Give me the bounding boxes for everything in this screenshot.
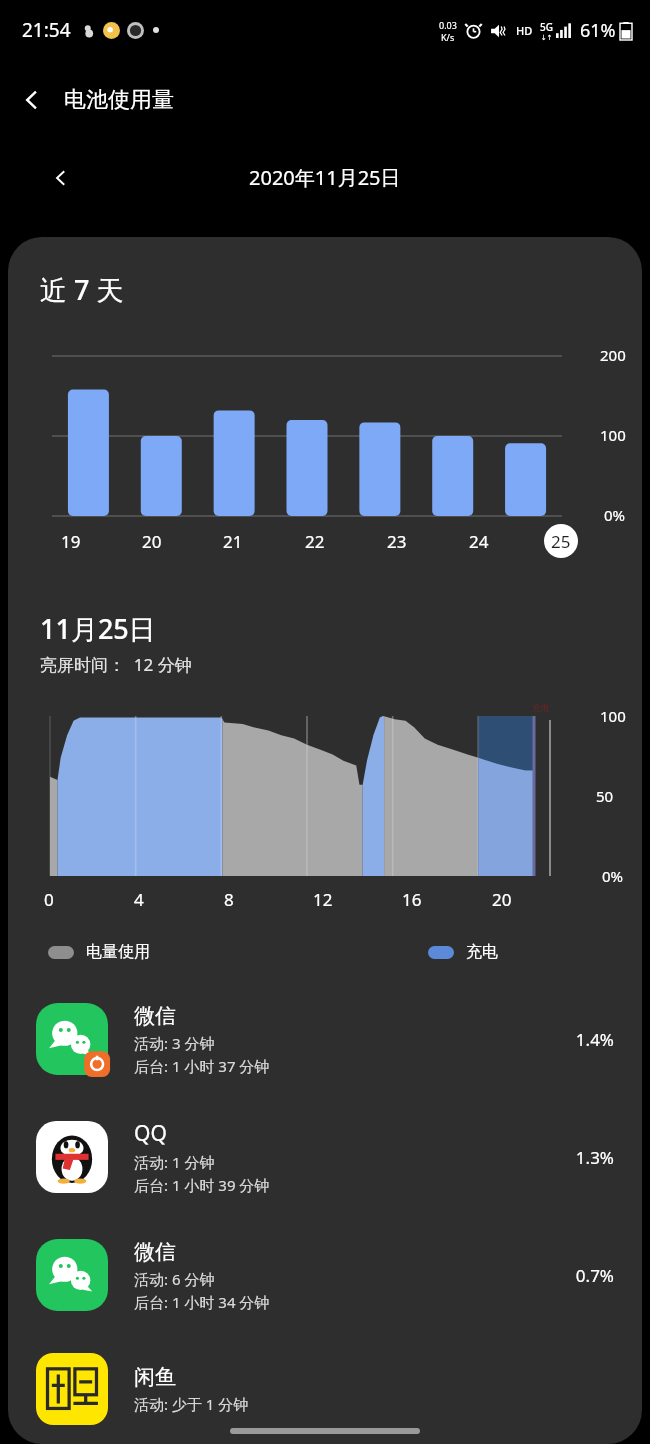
staticText: 电量使用 xyxy=(86,942,150,962)
button[interactable]: 25 xyxy=(544,524,578,558)
staticText: 8 xyxy=(224,888,234,911)
staticText: 19 xyxy=(61,530,81,553)
button[interactable]: Back xyxy=(0,68,64,132)
staticText: 后台: 1 小时 37 分钟 xyxy=(134,1056,270,1076)
staticText: 活动: 少于 1 分钟 xyxy=(134,1394,249,1414)
staticText: K/s xyxy=(441,31,455,43)
staticText: 1.3% xyxy=(575,1146,614,1169)
staticText: ↓↑ xyxy=(541,34,553,42)
staticText: 21 xyxy=(223,530,243,553)
staticText: 电池使用量 xyxy=(64,86,174,114)
button[interactable]: 20 xyxy=(135,524,169,558)
button[interactable]: 21 xyxy=(216,524,250,558)
staticText: 0.7% xyxy=(575,1264,614,1287)
button[interactable]: 23 xyxy=(380,524,414,558)
staticText: 后台: 1 小时 39 分钟 xyxy=(134,1175,270,1195)
staticText: 充电 xyxy=(466,942,498,962)
staticText: 0.03 xyxy=(439,19,457,31)
staticText: 100 xyxy=(600,425,626,445)
staticText: 活动: 3 分钟 xyxy=(134,1033,215,1053)
staticText: 20 xyxy=(492,888,512,911)
staticText: 200 xyxy=(600,345,626,365)
staticText: 闲鱼 xyxy=(134,1364,176,1390)
staticText: 100 xyxy=(600,706,626,726)
staticText: 21:54 xyxy=(22,17,71,43)
staticText: 23 xyxy=(387,530,407,553)
button[interactable]: 微信 xyxy=(8,980,642,1098)
staticText: 近 7 天 xyxy=(40,271,124,308)
staticText: 后台: 1 小时 34 分钟 xyxy=(134,1292,270,1312)
staticText: 22 xyxy=(305,530,325,553)
staticText: 24 xyxy=(469,530,489,553)
staticText: 5G xyxy=(540,20,553,34)
button[interactable]: 闲鱼 xyxy=(8,1334,642,1444)
staticText: 充电 xyxy=(532,702,550,713)
staticText: 11月25日 xyxy=(40,610,156,647)
staticText: 1.4% xyxy=(575,1028,614,1051)
staticText: 50 xyxy=(596,786,614,806)
staticText: 16 xyxy=(402,888,422,911)
staticText: 亮屏时间： 12 分钟 xyxy=(40,653,192,676)
staticText: 活动: 6 分钟 xyxy=(134,1269,215,1289)
staticText: 0% xyxy=(602,866,624,886)
button[interactable]: 24 xyxy=(462,524,496,558)
button[interactable]: 22 xyxy=(298,524,332,558)
staticText: 4 xyxy=(134,888,144,911)
staticText: HD xyxy=(516,23,533,38)
staticText: 微信 xyxy=(134,1239,176,1265)
button[interactable]: 19 xyxy=(54,524,88,558)
staticText: 61% xyxy=(580,18,616,43)
staticText: 25 xyxy=(551,530,571,553)
staticText: QQ xyxy=(134,1119,167,1148)
staticText: 微信 xyxy=(134,1003,176,1029)
button[interactable]: QQ xyxy=(8,1098,642,1216)
button[interactable]: Previous day xyxy=(36,153,86,203)
staticText: 活动: 1 分钟 xyxy=(134,1152,215,1172)
button[interactable]: 微信 xyxy=(8,1216,642,1334)
staticText: 0% xyxy=(604,505,626,525)
staticText: 0 xyxy=(44,888,54,911)
staticText: 2020年11月25日 xyxy=(249,164,401,191)
staticText: 12 xyxy=(313,888,333,911)
staticText: 20 xyxy=(142,530,162,553)
